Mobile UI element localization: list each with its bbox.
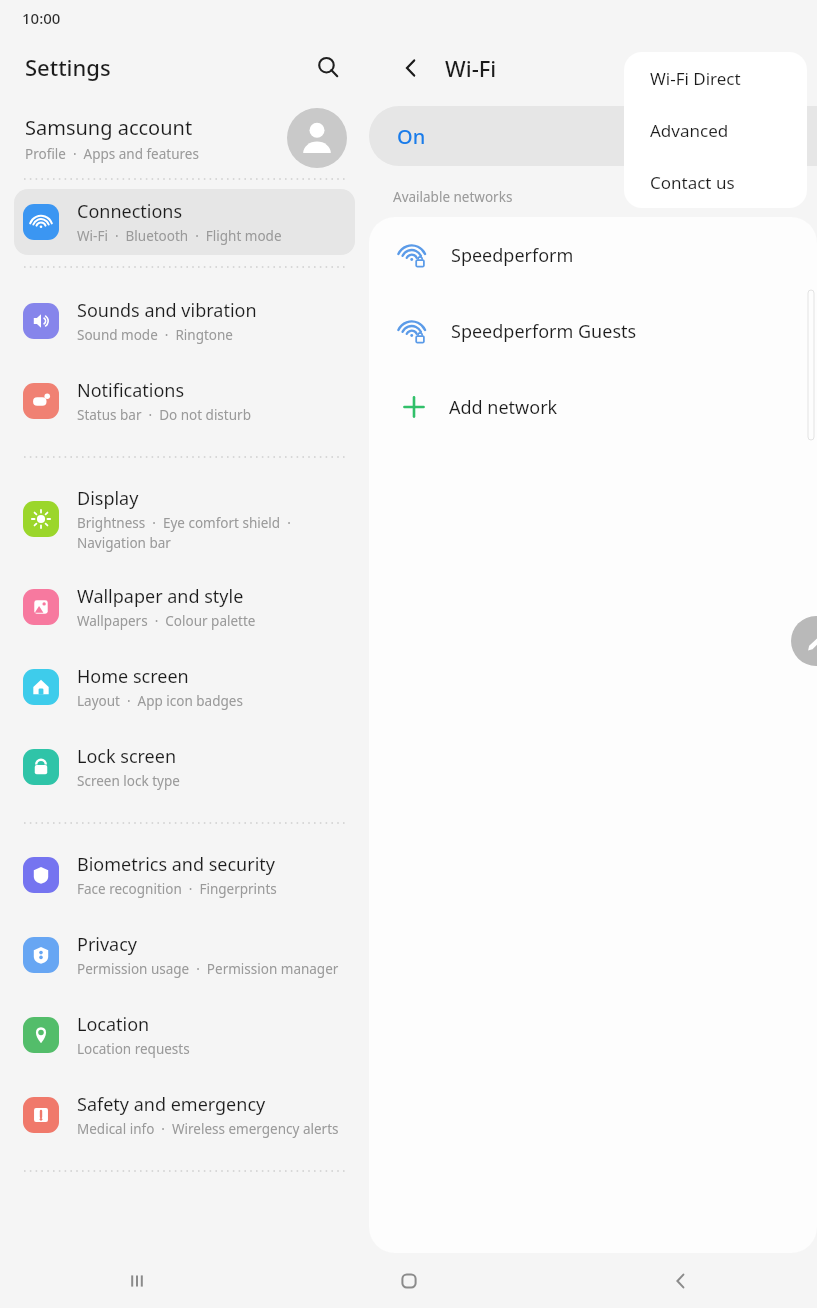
button[interactable]: Search xyxy=(307,46,349,88)
button[interactable]: Lock screen xyxy=(14,734,355,800)
button[interactable]: Edit xyxy=(791,616,817,666)
button[interactable]: Location xyxy=(14,1002,355,1068)
button[interactable]: Speedperform Guests xyxy=(369,293,817,369)
staticText: Add network xyxy=(449,395,558,420)
button[interactable]: Notifications xyxy=(14,368,355,434)
staticText: Medical info · Wireless emergency alerts xyxy=(77,1120,339,1138)
button[interactable]: Wallpaper and style xyxy=(14,574,355,640)
button[interactable]: Biometrics and security xyxy=(14,842,355,908)
button[interactable]: Connections xyxy=(14,189,355,255)
button[interactable]: Back xyxy=(545,1253,817,1308)
button[interactable]: Safety and emergency xyxy=(14,1082,355,1148)
staticText: Settings xyxy=(25,52,111,82)
button[interactable]: Home screen xyxy=(14,654,355,720)
staticText: Sounds and vibration xyxy=(77,298,257,323)
staticText: Display xyxy=(77,486,139,511)
staticText: 10:00 xyxy=(22,8,61,28)
staticText: Wi-Fi Direct xyxy=(650,67,741,90)
button[interactable]: Privacy xyxy=(14,922,355,988)
staticText: Wallpapers · Colour palette xyxy=(77,612,256,630)
staticText: Location xyxy=(77,1012,150,1037)
staticText: Wi-Fi xyxy=(445,53,497,83)
button[interactable]: Speedperform xyxy=(369,217,817,293)
staticText: Connections xyxy=(77,199,183,224)
button[interactable]: Contact us xyxy=(624,156,807,208)
button[interactable]: Recents xyxy=(0,1253,273,1308)
staticText: Brightness · Eye comfort shield · Naviga… xyxy=(77,514,291,552)
button[interactable]: Display xyxy=(14,476,355,562)
staticText: Advanced xyxy=(650,119,729,142)
staticText: Wi-Fi · Bluetooth · Flight mode xyxy=(77,227,282,245)
button[interactable]: Sounds and vibration xyxy=(14,288,355,354)
button[interactable]: Back xyxy=(391,48,431,88)
staticText: Home screen xyxy=(77,664,189,689)
button[interactable]: On xyxy=(369,106,817,166)
staticText: Screen lock type xyxy=(77,772,180,790)
staticText: On xyxy=(397,123,426,150)
staticText: Speedperform xyxy=(451,243,574,268)
staticText: Location requests xyxy=(77,1040,190,1058)
staticText: Available networks xyxy=(393,188,513,206)
button[interactable]: Wi-Fi Direct xyxy=(624,52,807,104)
staticText: Face recognition · Fingerprints xyxy=(77,880,277,898)
staticText: Status bar · Do not disturb xyxy=(77,406,251,424)
staticText: Lock screen xyxy=(77,744,177,769)
button[interactable]: Home xyxy=(273,1253,545,1308)
button[interactable]: Add network xyxy=(369,369,817,445)
staticText: Wallpaper and style xyxy=(77,584,244,609)
staticText: Layout · App icon badges xyxy=(77,692,243,710)
staticText: Contact us xyxy=(650,171,735,194)
button[interactable]: Samsung account xyxy=(0,98,369,178)
staticText: Permission usage · Permission manager xyxy=(77,960,339,978)
staticText: Notifications xyxy=(77,378,185,403)
staticText: Profile · Apps and features xyxy=(25,145,199,163)
button[interactable]: Advanced xyxy=(624,104,807,156)
staticText: Safety and emergency xyxy=(77,1092,266,1117)
staticText: Samsung account xyxy=(25,114,193,141)
staticText: Privacy xyxy=(77,932,138,957)
staticText: Biometrics and security xyxy=(77,852,275,877)
staticText: Sound mode · Ringtone xyxy=(77,326,233,344)
staticText: Speedperform Guests xyxy=(451,319,637,344)
